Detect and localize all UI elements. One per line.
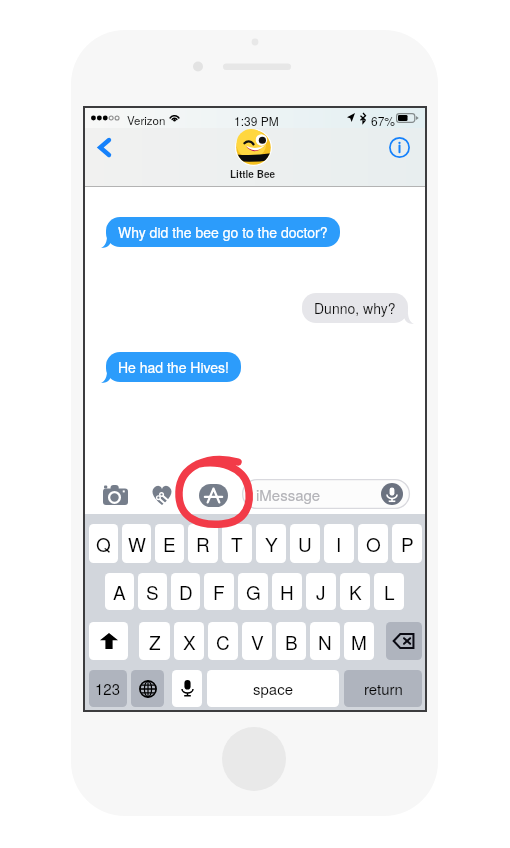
staticText: Q: [96, 530, 111, 557]
button[interactable]: G: [238, 573, 268, 610]
button[interactable]: Back: [87, 130, 121, 164]
staticText: C: [216, 628, 230, 655]
button[interactable]: Details: [386, 134, 412, 160]
button[interactable]: Numbers: [89, 670, 127, 707]
button[interactable]: Q: [89, 524, 118, 563]
staticText: L: [384, 578, 395, 605]
button[interactable]: C: [208, 622, 238, 660]
staticText: Verizon: [127, 112, 166, 128]
staticText: D: [179, 578, 193, 605]
staticText: U: [298, 530, 312, 557]
staticText: Little Bee: [230, 167, 276, 181]
staticText: V: [251, 628, 264, 655]
staticText: T: [231, 530, 243, 557]
staticText: A: [113, 578, 126, 605]
button[interactable]: Dunno, why?: [302, 293, 408, 323]
button[interactable]: Digital Touch: [148, 482, 176, 507]
staticText: H: [280, 578, 294, 605]
button[interactable]: B: [276, 622, 306, 660]
button[interactable]: F: [204, 573, 234, 610]
staticText: O: [366, 530, 381, 557]
staticText: iMessage: [256, 484, 321, 505]
button[interactable]: Backspace: [386, 622, 422, 660]
staticText: Z: [149, 628, 161, 655]
staticText: J: [316, 578, 326, 605]
button[interactable]: Dictation: [172, 670, 202, 707]
button[interactable]: R: [188, 524, 218, 563]
staticText: E: [163, 530, 176, 557]
button[interactable]: H: [272, 573, 302, 610]
button[interactable]: J: [306, 573, 336, 610]
staticText: Dunno, why?: [314, 298, 396, 318]
button[interactable]: M: [344, 622, 374, 660]
staticText: return: [364, 678, 403, 699]
button[interactable]: Why did the bee go to the doctor?: [106, 217, 340, 247]
staticText: Y: [265, 530, 278, 557]
button[interactable]: T: [222, 524, 252, 563]
button[interactable]: I: [324, 524, 354, 563]
button[interactable]: E: [155, 524, 184, 563]
staticText: B: [285, 628, 298, 655]
staticText: 123: [95, 678, 121, 699]
staticText: X: [183, 628, 196, 655]
button[interactable]: N: [310, 622, 340, 660]
staticText: Why did the bee go to the doctor?: [118, 222, 328, 242]
button[interactable]: U: [290, 524, 320, 563]
staticText: P: [401, 530, 414, 557]
button[interactable]: Dictate: [381, 483, 403, 505]
staticText: I: [336, 530, 342, 557]
button[interactable]: S: [138, 573, 167, 610]
button[interactable]: Change keyboard: [131, 670, 164, 707]
button[interactable]: He had the Hives!: [106, 352, 241, 382]
button[interactable]: Z: [139, 622, 170, 660]
staticText: K: [349, 578, 362, 605]
button[interactable]: P: [392, 524, 422, 563]
button[interactable]: space: [207, 670, 339, 707]
button[interactable]: Little Bee: [230, 129, 276, 181]
button[interactable]: Shift: [89, 622, 128, 660]
button[interactable]: D: [171, 573, 200, 610]
staticText: M: [351, 628, 367, 655]
staticText: space: [253, 678, 294, 699]
button[interactable]: return: [344, 670, 422, 707]
staticText: F: [213, 578, 225, 605]
button[interactable]: Y: [256, 524, 286, 563]
button[interactable]: L: [374, 573, 404, 610]
staticText: S: [146, 578, 159, 605]
staticText: He had the Hives!: [118, 357, 229, 377]
staticText: 1:39 PM: [234, 112, 279, 129]
button[interactable]: iMessage: [242, 479, 410, 509]
staticText: 67%: [371, 112, 396, 129]
button[interactable]: A: [105, 573, 134, 610]
staticText: W: [128, 530, 146, 557]
staticText: R: [196, 530, 210, 557]
staticText: N: [318, 628, 332, 655]
button[interactable]: V: [242, 622, 272, 660]
button[interactable]: App Store: [198, 483, 229, 508]
button[interactable]: K: [340, 573, 370, 610]
button[interactable]: Camera: [102, 483, 129, 507]
staticText: G: [246, 578, 261, 605]
button[interactable]: O: [358, 524, 388, 563]
button[interactable]: W: [122, 524, 151, 563]
button[interactable]: X: [174, 622, 204, 660]
